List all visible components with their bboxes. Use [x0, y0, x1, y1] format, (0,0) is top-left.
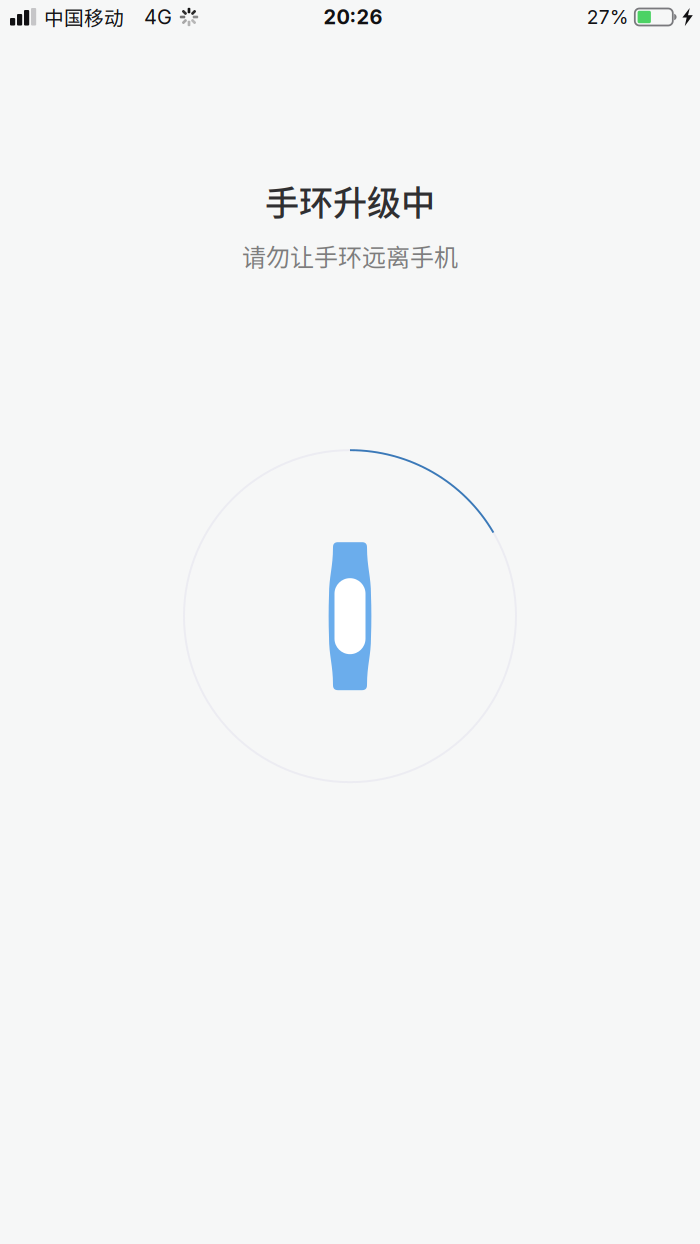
staticText: 手环升级中 [265, 176, 435, 225]
staticText: 请勿让手环远离手机 [242, 238, 458, 273]
staticText: 20:26 [323, 5, 382, 29]
staticText: 中国移动 [44, 3, 124, 31]
staticText: 4G [144, 5, 172, 29]
staticText: 27% [587, 5, 629, 29]
